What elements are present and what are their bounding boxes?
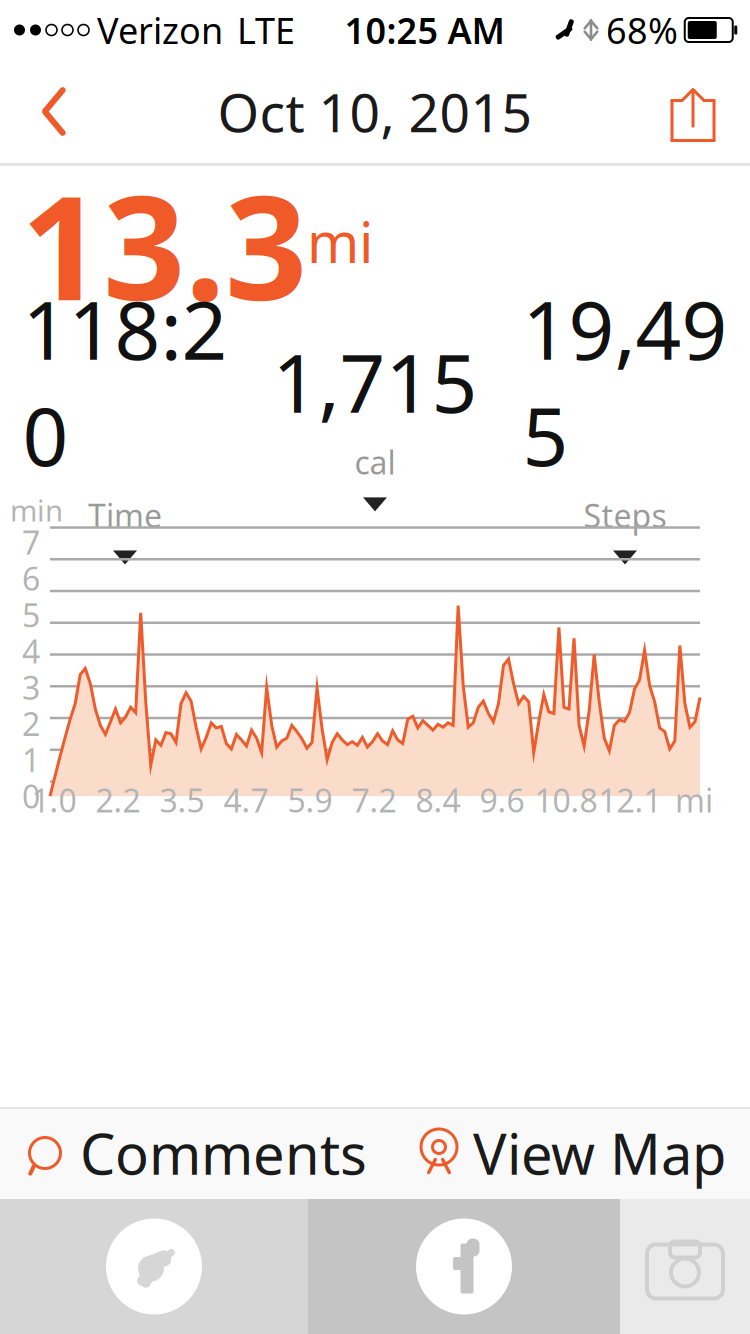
staticText: Comments xyxy=(80,1116,367,1190)
button[interactable]: Comments xyxy=(0,1107,367,1199)
staticText: 1,715 xyxy=(272,329,477,435)
staticText: 10:25 AM xyxy=(344,6,504,54)
button[interactable]: Share on Twitter xyxy=(0,1199,308,1334)
staticText: 9.6 xyxy=(479,779,524,821)
button[interactable]: Add photo xyxy=(620,1199,750,1334)
button[interactable]: 118:20 xyxy=(0,350,250,490)
staticText: cal xyxy=(354,441,395,483)
staticText: 1.0 xyxy=(31,779,76,821)
button[interactable]: Share xyxy=(650,61,736,161)
staticText: 13.3 xyxy=(21,149,307,340)
staticText: 5.9 xyxy=(287,779,332,821)
button[interactable]: View Map xyxy=(417,1107,750,1199)
staticText: LTE xyxy=(237,6,295,54)
button[interactable]: 19,495 xyxy=(500,350,750,490)
staticText: 5 xyxy=(22,593,40,636)
staticText: 2.2 xyxy=(95,779,140,821)
button[interactable]: Share on Facebook xyxy=(308,1199,620,1334)
staticText: View Map xyxy=(473,1116,726,1190)
staticText: 118:20 xyxy=(22,275,227,488)
staticText: Oct 10, 2015 xyxy=(217,76,532,147)
staticText: Steps xyxy=(583,494,666,536)
staticText: min xyxy=(10,490,63,529)
staticText: Verizon xyxy=(97,6,223,54)
staticText: mi xyxy=(675,779,713,821)
staticText: 12.1 xyxy=(598,779,661,821)
staticText: 19,495 xyxy=(522,275,727,488)
staticText: 7.2 xyxy=(351,779,396,821)
staticText: 3.5 xyxy=(159,779,204,821)
staticText: 6 xyxy=(22,557,40,600)
staticText: 7 xyxy=(22,521,40,563)
staticText: 1 xyxy=(22,739,40,781)
staticText: 2 xyxy=(22,702,40,745)
staticText: 0 xyxy=(22,775,40,817)
button[interactable]: Back xyxy=(14,61,94,161)
staticText: 10.8 xyxy=(534,779,597,821)
button[interactable]: 1,715 xyxy=(250,350,500,490)
staticText: 3 xyxy=(22,666,40,708)
staticText: 8.4 xyxy=(415,779,460,821)
staticText: Time xyxy=(88,494,162,536)
staticText: 68% xyxy=(606,6,678,54)
staticText: mi xyxy=(307,204,373,279)
staticText: 4 xyxy=(22,630,40,672)
staticText: 4.7 xyxy=(223,779,268,821)
